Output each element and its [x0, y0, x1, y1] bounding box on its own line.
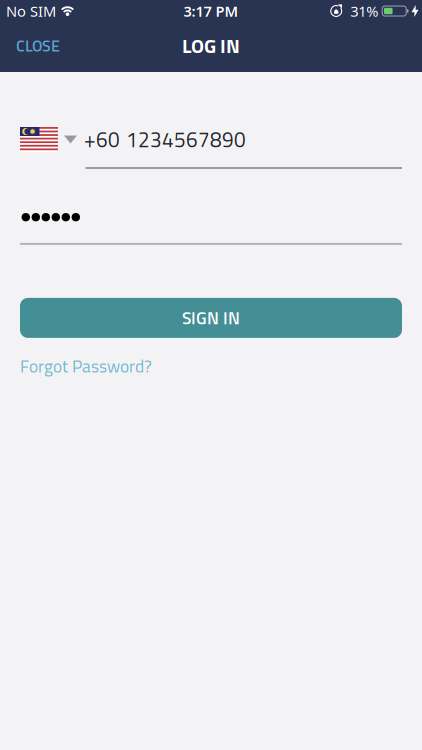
staticText: 3:17 PM [183, 1, 238, 21]
button[interactable]: CLOSE [0, 33, 60, 58]
button[interactable]: Country code [20, 127, 77, 152]
staticText: No SIM [6, 1, 56, 21]
button[interactable]: Forgot Password? [20, 353, 152, 379]
staticText: Forgot Password? [20, 353, 152, 379]
button[interactable]: SIGN IN [20, 298, 402, 338]
staticText: SIGN IN [182, 305, 240, 331]
staticText: 31% [350, 1, 378, 21]
staticText: +60 [84, 124, 120, 155]
staticText: 1234567890 [126, 124, 246, 155]
staticText: LOG IN [182, 30, 240, 61]
staticText: CLOSE [16, 33, 60, 58]
